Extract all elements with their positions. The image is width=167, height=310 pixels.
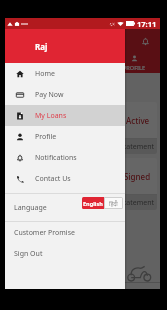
staticText: PROFILE [123, 64, 145, 71]
staticText: Customer Promise [14, 228, 75, 238]
button[interactable]: Notifications [5, 147, 125, 168]
button[interactable]: Profile [5, 126, 125, 147]
button[interactable]: Pay Now [5, 84, 125, 105]
button[interactable]: Personal Loan [8, 158, 157, 210]
staticText: 17:11 [137, 19, 157, 29]
staticText: हिंदी [109, 200, 118, 207]
button[interactable]: Personal Loan [8, 102, 157, 154]
button[interactable]: LOANS [56, 53, 108, 73]
button[interactable]: Home [5, 63, 125, 84]
staticText: Statement [120, 198, 155, 208]
staticText: Notifications [35, 153, 77, 163]
button[interactable]: Statement [118, 139, 157, 154]
button[interactable]: My Loans [5, 105, 125, 126]
staticText: XXXXXX4821 [14, 178, 49, 186]
button[interactable]: Statement [118, 195, 157, 210]
staticText: Pay Now [35, 90, 64, 100]
button[interactable]: Pay Now [8, 139, 118, 154]
staticText: Profile [35, 132, 57, 142]
staticText: Raj [35, 41, 48, 52]
button[interactable]: PROFILE [108, 53, 160, 73]
staticText: Home [35, 69, 55, 79]
staticText: My Loans [35, 111, 67, 121]
staticText: Active [126, 115, 150, 126]
button[interactable]: English [82, 197, 104, 209]
staticText: Personal Loan [14, 110, 62, 120]
staticText: Contact Us [35, 174, 71, 184]
staticText: Signed [124, 171, 151, 182]
button[interactable]: Pay Now [8, 195, 118, 210]
button[interactable]: Sign Out [5, 243, 125, 264]
button[interactable]: Language [5, 194, 125, 221]
staticText: XXXXXX4821 [14, 122, 49, 130]
button[interactable]: Customer Promise [5, 222, 125, 243]
staticText: Language [14, 203, 47, 213]
button[interactable]: Contact Us [5, 168, 125, 189]
button[interactable]: HOME [5, 53, 56, 73]
staticText: English [83, 200, 103, 207]
button[interactable]: हिंदी [104, 197, 123, 209]
staticText: Sign Out [14, 249, 43, 259]
button[interactable]: Notifications [138, 34, 152, 48]
staticText: Statement [120, 142, 155, 152]
